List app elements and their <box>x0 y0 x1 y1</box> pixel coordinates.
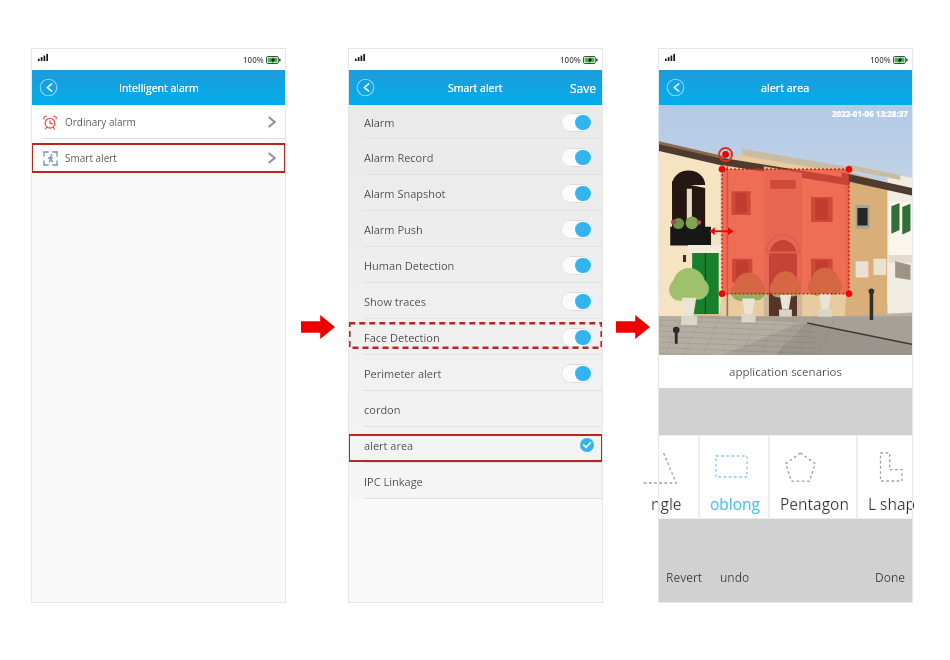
button[interactable]: Back <box>356 78 375 97</box>
button[interactable]: Ordinary alarm <box>31 105 286 139</box>
staticText: oblong <box>710 493 760 514</box>
staticText: Smart alert <box>448 81 503 95</box>
button[interactable]: IPC Linkage <box>348 463 603 499</box>
staticText: IPC Linkage <box>364 474 423 489</box>
staticText: Show traces <box>364 294 426 309</box>
button[interactable] <box>561 220 593 239</box>
staticText: cordon <box>364 402 401 417</box>
button[interactable]: Revert <box>662 565 707 589</box>
button[interactable]: Alarm Push <box>348 211 603 247</box>
button[interactable]: cordon <box>348 391 603 427</box>
button[interactable] <box>561 328 593 347</box>
staticText: Smart alert <box>65 151 117 165</box>
staticText: 100% <box>560 54 581 65</box>
button[interactable]: alert area <box>348 427 603 463</box>
button[interactable]: Alarm Record <box>348 139 603 175</box>
button[interactable] <box>561 113 593 132</box>
staticText: alert area <box>761 80 810 95</box>
staticText: undo <box>720 569 750 585</box>
button[interactable]: Alarm <box>348 105 603 139</box>
staticText: Face Detection <box>364 330 440 345</box>
staticText: Alarm <box>364 115 395 130</box>
staticText: application scenarios <box>729 364 843 380</box>
button[interactable]: Human Detection <box>348 247 603 283</box>
button[interactable]: Back <box>39 78 58 97</box>
button[interactable]: Alarm Snapshot <box>348 175 603 211</box>
button[interactable]: Face Detection <box>348 319 603 355</box>
staticText: 100% <box>870 54 891 65</box>
button[interactable]: L shap <box>857 435 913 519</box>
staticText: Save <box>570 80 596 96</box>
staticText: Alarm Record <box>364 150 434 165</box>
staticText: Alarm Push <box>364 222 423 237</box>
button[interactable]: ngle <box>658 435 699 519</box>
staticText: Alarm Snapshot <box>364 186 446 201</box>
button[interactable]: Done <box>871 565 910 589</box>
button[interactable] <box>561 364 593 383</box>
staticText: Revert <box>666 569 703 585</box>
button[interactable] <box>561 148 593 167</box>
button[interactable] <box>561 256 593 275</box>
button[interactable] <box>561 292 593 311</box>
button[interactable]: Perimeter alert <box>348 355 603 391</box>
staticText: 2022-01-06 13:28:37 <box>832 108 908 119</box>
button[interactable]: Save <box>561 70 603 105</box>
staticText: Intelligent alarm <box>119 81 199 95</box>
staticText: 100% <box>243 54 264 65</box>
staticText: alert area <box>364 438 414 453</box>
button[interactable]: Smart alert <box>31 143 286 173</box>
staticText: Done <box>875 569 906 585</box>
button[interactable] <box>561 184 593 203</box>
button[interactable]: Show traces <box>348 283 603 319</box>
staticText: Ordinary alarm <box>65 115 136 129</box>
staticText: Pentagon <box>780 493 849 514</box>
staticText: Human Detection <box>364 258 455 273</box>
staticText: L shap <box>868 493 916 514</box>
staticText: Perimeter alert <box>364 366 442 381</box>
button[interactable]: Back <box>666 78 685 97</box>
button[interactable]: oblong <box>699 435 769 519</box>
button[interactable]: undo <box>716 565 754 589</box>
button[interactable]: Pentagon <box>769 435 857 519</box>
staticText: ngle <box>651 493 682 514</box>
